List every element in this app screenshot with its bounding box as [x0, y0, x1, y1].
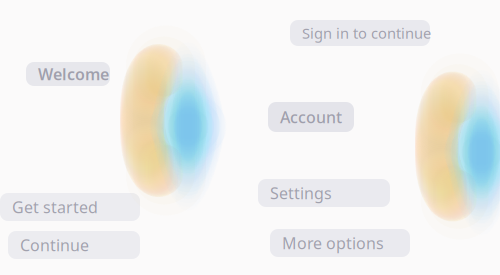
button[interactable]: Get started [0, 193, 140, 221]
staticText: Welcome [38, 63, 109, 85]
staticText: Continue [20, 234, 89, 256]
button[interactable]: More options [270, 229, 410, 257]
staticText: Get started [12, 196, 98, 218]
button[interactable]: Sign in to continue [290, 20, 430, 46]
staticText: Settings [270, 182, 332, 204]
staticText: Sign in to continue [302, 23, 431, 43]
button[interactable]: Continue [8, 231, 140, 259]
staticText: Account [280, 106, 342, 128]
staticText: More options [282, 232, 384, 254]
button[interactable]: Account [268, 102, 354, 132]
button[interactable]: Settings [258, 179, 390, 207]
button[interactable]: Welcome [26, 62, 110, 86]
